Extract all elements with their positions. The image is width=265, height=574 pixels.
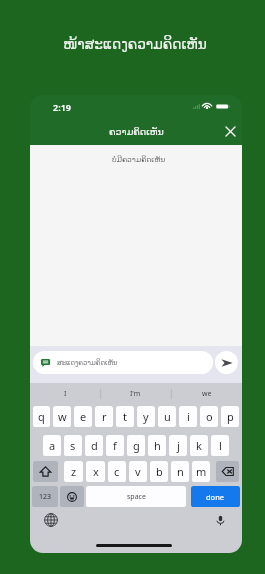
- button[interactable]: d: [85, 435, 103, 456]
- staticText: 123: [39, 492, 52, 502]
- staticText: m: [196, 464, 207, 479]
- button[interactable]: r: [95, 406, 113, 427]
- other: Backspace: [222, 467, 234, 476]
- staticText: ບໍ່ມີຄວາມຄິດເຫັນ: [112, 155, 166, 164]
- staticText: t: [123, 409, 127, 424]
- button[interactable]: f: [106, 435, 124, 456]
- button[interactable]: o: [200, 406, 218, 427]
- staticText: o: [206, 409, 213, 424]
- staticText: a: [49, 438, 56, 453]
- staticText: s: [70, 438, 76, 453]
- button[interactable]: v: [129, 461, 147, 482]
- button[interactable]: Change keyboard language: [42, 511, 60, 529]
- staticText: j: [177, 438, 180, 453]
- staticText: q: [38, 409, 45, 424]
- button[interactable]: b: [150, 461, 168, 482]
- staticText: 2:19: [53, 101, 71, 113]
- button[interactable]: g: [127, 435, 145, 456]
- staticText: l: [219, 438, 222, 453]
- button[interactable]: w: [53, 406, 71, 427]
- staticText: u: [164, 409, 171, 424]
- button[interactable]: Backspace: [216, 461, 239, 482]
- button[interactable]: Shift: [33, 461, 58, 482]
- button[interactable]: m: [192, 461, 210, 482]
- button[interactable]: space: [86, 486, 186, 507]
- button[interactable]: c: [108, 461, 126, 482]
- button[interactable]: l: [211, 435, 229, 456]
- staticText: we: [202, 389, 212, 399]
- staticText: ຄວາມຄິດເຫັນ: [109, 126, 164, 137]
- staticText: x: [93, 464, 99, 479]
- staticText: w: [58, 409, 67, 424]
- button[interactable]: Close: [219, 120, 241, 142]
- staticText: i: [187, 409, 190, 424]
- button[interactable]: s: [64, 435, 82, 456]
- button[interactable]: done: [191, 486, 240, 507]
- staticText: g: [133, 438, 140, 453]
- button[interactable]: Dictate: [211, 511, 229, 529]
- staticText: b: [156, 464, 163, 479]
- button[interactable]: p: [221, 406, 239, 427]
- button[interactable]: I: [30, 383, 100, 405]
- staticText: y: [143, 409, 149, 424]
- button[interactable]: a: [43, 435, 61, 456]
- button[interactable]: x: [86, 461, 105, 482]
- button[interactable]: n: [171, 461, 189, 482]
- button[interactable]: q: [33, 406, 50, 427]
- staticText: r: [102, 409, 107, 424]
- button[interactable]: 123: [32, 486, 58, 507]
- button[interactable]: I'm: [100, 383, 171, 405]
- staticText: done: [206, 492, 225, 502]
- button[interactable]: i: [179, 406, 197, 427]
- staticText: z: [71, 464, 77, 479]
- button[interactable]: t: [116, 406, 134, 427]
- staticText: I'm: [130, 389, 141, 399]
- button[interactable]: k: [190, 435, 208, 456]
- button[interactable]: Send: [215, 351, 238, 374]
- other: Shift: [40, 466, 51, 477]
- staticText: e: [80, 409, 87, 424]
- button[interactable]: we: [171, 383, 242, 405]
- button[interactable]: h: [148, 435, 166, 456]
- button[interactable]: j: [169, 435, 187, 456]
- staticText: ສະແດງຄວາມຄິດເຫັນ: [57, 359, 118, 367]
- button[interactable]: ສະແດງຄວາມຄິດເຫັນ: [33, 351, 213, 374]
- button[interactable]: u: [158, 406, 176, 427]
- staticText: I: [64, 389, 67, 399]
- staticText: h: [154, 438, 161, 453]
- staticText: c: [114, 464, 120, 479]
- button[interactable]: y: [137, 406, 155, 427]
- staticText: f: [113, 438, 117, 453]
- button[interactable]: Emoji: [60, 486, 84, 507]
- staticText: v: [135, 464, 141, 479]
- button[interactable]: z: [64, 461, 83, 482]
- staticText: k: [196, 438, 202, 453]
- staticText: space: [127, 492, 146, 502]
- staticText: n: [177, 464, 184, 479]
- staticText: d: [91, 438, 98, 453]
- staticText: ໜ້າສະແດງຄວາມຄິດເຫັນ: [63, 36, 207, 52]
- button[interactable]: e: [74, 406, 92, 427]
- staticText: p: [227, 409, 234, 424]
